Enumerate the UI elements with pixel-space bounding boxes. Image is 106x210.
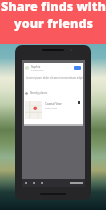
button[interactable]: Share <box>74 66 81 70</box>
staticText: Lorem ipsum dolor sit amet consectetuer … <box>26 76 83 80</box>
button[interactable]: Back <box>24 181 28 185</box>
button[interactable]: Coastal View <box>24 101 83 119</box>
staticText: saved place <box>45 107 57 110</box>
button[interactable]: Home <box>32 181 36 185</box>
staticText: Share finds with <box>1 0 106 15</box>
button[interactable]: Sophie <box>24 64 83 72</box>
staticText: Sophie <box>31 65 41 69</box>
staticText: 3 hours ago <box>31 69 44 72</box>
staticText: your friends <box>14 15 93 32</box>
staticText: Coastal View <box>45 102 62 106</box>
button[interactable]: Recents <box>40 181 44 185</box>
staticText: Nearby places <box>30 91 48 95</box>
